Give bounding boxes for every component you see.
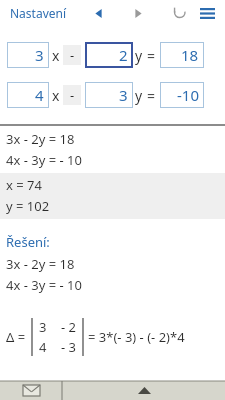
staticText: y: [135, 86, 143, 105]
staticText: -: [70, 46, 75, 64]
button[interactable]: 3: [7, 42, 49, 68]
staticText: 4: [35, 85, 44, 105]
staticText: = 3*(- 3) - (- 2)*4: [88, 328, 185, 346]
button[interactable]: -10: [160, 82, 204, 108]
staticText: 3x - 2y = 18: [6, 255, 75, 273]
button[interactable]: Expand: [63, 381, 225, 400]
staticText: 3x - 2y = 18: [6, 130, 75, 148]
button[interactable]: Next: [129, 4, 147, 22]
staticText: 4x - 3y = - 10: [6, 276, 82, 294]
staticText: - 2: [61, 318, 77, 336]
staticText: y: [135, 46, 143, 65]
staticText: 18: [181, 45, 199, 65]
button[interactable]: 18: [160, 42, 204, 68]
button[interactable]: Menu: [197, 3, 217, 23]
button[interactable]: Previous: [89, 4, 107, 22]
staticText: Nastavení: [10, 5, 67, 21]
staticText: 4: [39, 338, 61, 356]
staticText: y = 102: [6, 197, 50, 215]
staticText: - 3: [61, 338, 77, 356]
staticText: x: [52, 86, 60, 105]
button[interactable]: Nastavení: [8, 3, 69, 23]
staticText: 3: [119, 85, 128, 105]
staticText: Δ =: [6, 328, 26, 346]
staticText: =: [147, 46, 156, 65]
staticText: =: [147, 86, 156, 105]
button[interactable]: Undo: [169, 3, 189, 23]
button[interactable]: Mail: [0, 381, 62, 400]
staticText: Řešení:: [6, 233, 50, 251]
staticText: 3: [35, 45, 44, 65]
staticText: -: [70, 86, 75, 104]
staticText: 3: [39, 318, 61, 336]
staticText: x: [52, 46, 60, 65]
staticText: -10: [177, 85, 199, 105]
button[interactable]: 3: [85, 82, 133, 108]
button[interactable]: 2: [85, 42, 133, 68]
staticText: 2: [119, 45, 128, 65]
staticText: 4x - 3y = - 10: [6, 151, 82, 169]
button[interactable]: 4: [7, 82, 49, 108]
staticText: x = 74: [6, 176, 42, 194]
